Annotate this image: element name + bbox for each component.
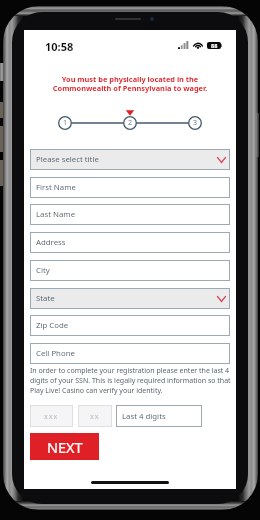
staticText: Last Name xyxy=(36,209,76,220)
staticText: 3 xyxy=(193,118,198,128)
staticText: Cell Phone xyxy=(36,348,75,359)
staticText: 88 xyxy=(211,42,218,49)
staticText: State xyxy=(36,293,55,304)
staticText: xx xyxy=(90,411,100,421)
staticText: Please select title xyxy=(36,154,99,165)
button[interactable]: Last Name xyxy=(30,204,230,225)
staticText: Last 4 digits xyxy=(122,411,166,422)
staticText: Zip Code xyxy=(36,320,69,331)
staticText: 2 xyxy=(128,118,133,128)
button[interactable]: Zip Code xyxy=(30,315,230,336)
staticText: 1 xyxy=(63,118,68,128)
staticText: In order to complete your registration p… xyxy=(30,366,233,396)
button[interactable]: Please select title xyxy=(30,149,230,170)
other: Cellular signal xyxy=(178,41,189,49)
staticText: NEXT xyxy=(47,437,83,457)
other: Wi-Fi xyxy=(193,41,203,49)
staticText: You must be physically located in the Co… xyxy=(24,74,236,93)
other: Open dropdown xyxy=(217,296,226,302)
button[interactable]: NEXT xyxy=(30,433,99,460)
button[interactable]: Cell Phone xyxy=(30,343,230,364)
staticText: xxx xyxy=(44,411,59,421)
button[interactable]: First Name xyxy=(30,177,230,198)
staticText: 10:58 xyxy=(45,39,74,54)
button[interactable]: City xyxy=(30,260,230,281)
button[interactable]: xxx xyxy=(30,405,73,427)
button[interactable]: xx xyxy=(78,405,112,427)
staticText: City xyxy=(36,265,50,276)
button[interactable]: Last 4 digits xyxy=(116,405,202,427)
button[interactable]: Address xyxy=(30,232,230,253)
staticText: First Name xyxy=(36,182,76,193)
button[interactable]: State xyxy=(30,288,230,309)
other: Open dropdown xyxy=(217,157,226,163)
staticText: Address xyxy=(36,237,66,248)
